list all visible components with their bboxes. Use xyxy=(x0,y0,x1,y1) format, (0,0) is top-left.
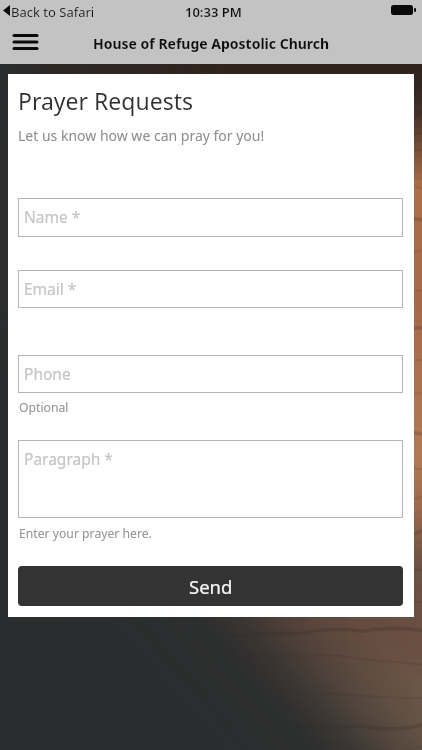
staticText: Name * xyxy=(24,206,81,227)
button[interactable]: Name * xyxy=(18,198,403,237)
staticText: 10:33 PM xyxy=(185,3,242,21)
staticText: Back to Safari xyxy=(11,3,95,21)
staticText: Prayer Requests xyxy=(18,85,193,116)
staticText: Enter your prayer here. xyxy=(19,525,152,542)
button[interactable]: Phone xyxy=(18,355,403,393)
staticText: House of Refuge Apostolic Church xyxy=(93,34,330,53)
button[interactable]: Open navigation menu xyxy=(4,23,46,63)
staticText: Optional xyxy=(19,399,69,416)
button[interactable]: Send xyxy=(18,566,403,606)
staticText: Email * xyxy=(24,278,77,299)
button[interactable]: Paragraph * xyxy=(18,440,403,518)
button[interactable]: Email * xyxy=(18,270,403,308)
staticText: Paragraph * xyxy=(24,448,113,469)
staticText: Let us know how we can pray for you! xyxy=(18,126,265,145)
staticText: Phone xyxy=(24,363,71,384)
staticText: Send xyxy=(189,574,233,599)
